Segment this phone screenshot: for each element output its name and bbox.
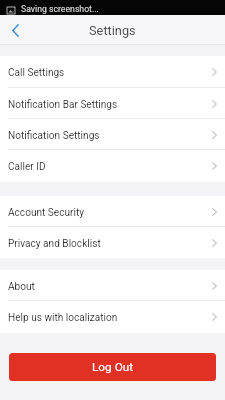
- staticText: Privacy and Blocklist: [8, 238, 101, 250]
- staticText: Account Security: [8, 207, 84, 219]
- staticText: Notification Bar Settings: [8, 99, 118, 111]
- staticText: Log Out: [92, 360, 134, 374]
- button[interactable]: Account Security: [0, 196, 225, 227]
- button[interactable]: Call Settings: [0, 56, 225, 88]
- staticText: Caller ID: [8, 161, 46, 173]
- staticText: Help us with localization: [8, 312, 118, 324]
- button[interactable]: Privacy and Blocklist: [0, 227, 225, 258]
- button[interactable]: About: [0, 270, 225, 301]
- button[interactable]: Log Out: [9, 353, 216, 381]
- button[interactable]: Back: [0, 15, 30, 45]
- staticText: Call Settings: [8, 67, 65, 79]
- staticText: Notification Settings: [8, 130, 100, 142]
- staticText: About: [8, 281, 35, 293]
- button[interactable]: Caller ID: [0, 150, 225, 182]
- staticText: Saving screenshot...: [21, 4, 99, 14]
- button[interactable]: Notification Bar Settings: [0, 88, 225, 119]
- staticText: Settings: [89, 23, 136, 38]
- button[interactable]: Help us with localization: [0, 301, 225, 333]
- button[interactable]: Notification Settings: [0, 119, 225, 150]
